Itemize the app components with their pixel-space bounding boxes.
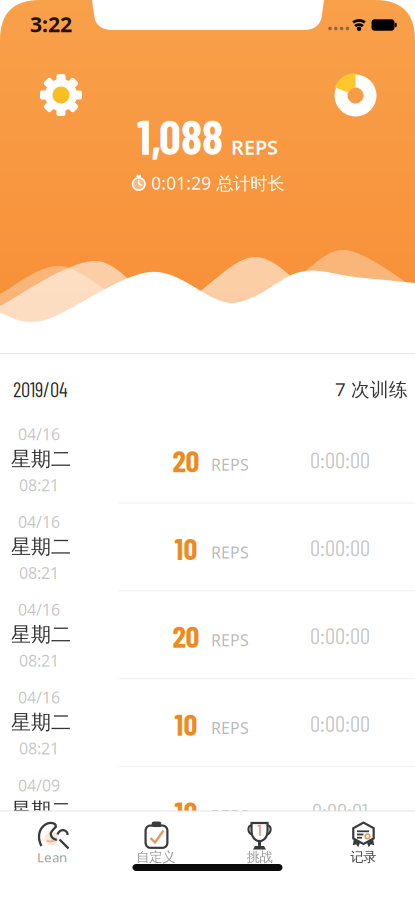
staticText: 08:21 — [19, 650, 59, 671]
staticText: 0:00:00 — [310, 534, 370, 561]
staticText: 08:21 — [19, 562, 59, 583]
staticText: 0:00:00 — [310, 446, 370, 473]
staticText: 星期二 — [11, 710, 71, 735]
staticText: 挑战 — [246, 849, 272, 865]
staticText: 04/16 — [18, 687, 60, 708]
staticText: 08:21 — [19, 474, 59, 496]
staticText: 04/16 — [18, 423, 60, 445]
staticText: 04/16 — [18, 599, 60, 620]
button[interactable]: 1 — [207, 811, 311, 875]
staticText: REPS — [211, 629, 249, 651]
button[interactable]: 记录 — [311, 811, 415, 875]
staticText: 记录 — [350, 849, 376, 865]
staticText: 7 次训练 — [335, 377, 408, 401]
staticText: 1,088 — [137, 107, 223, 164]
staticText: 08:21 — [19, 738, 59, 759]
button[interactable]: Lean — [0, 811, 104, 875]
staticText: 0:00:00 — [310, 709, 370, 736]
staticText: 自定义 — [136, 849, 175, 865]
staticText: 2019/04 — [13, 377, 68, 401]
staticText: 星期二 — [11, 622, 71, 647]
staticText: REPS — [211, 805, 249, 826]
staticText: 星期二 — [11, 534, 71, 559]
button[interactable]: Statistics — [331, 71, 379, 119]
staticText: REPS — [211, 542, 249, 563]
staticText: Lean — [37, 848, 67, 866]
staticText: 0:00:01 — [312, 797, 368, 824]
staticText: 10 — [174, 705, 197, 742]
staticText: REPS — [211, 454, 249, 475]
staticText: 04/16 — [18, 511, 60, 532]
staticText: 20 — [172, 442, 199, 478]
staticText: 星期二 — [11, 798, 71, 822]
staticText: 星期二 — [11, 447, 71, 471]
staticText: 10 — [174, 793, 197, 830]
button[interactable]: Settings — [38, 72, 84, 118]
staticText: 08:21 — [19, 826, 59, 847]
button[interactable]: 自定义 — [104, 811, 207, 875]
staticText: 0:01:29 总计时长 — [151, 171, 284, 194]
staticText: 3:22 — [30, 10, 72, 38]
staticText: REPS — [231, 134, 278, 160]
staticText: 10 — [174, 529, 197, 566]
staticText: REPS — [211, 717, 249, 738]
staticText: 1 — [257, 821, 261, 839]
staticText: 20 — [172, 617, 199, 654]
staticText: 04/09 — [18, 775, 60, 796]
staticText: 0:00:00 — [310, 621, 370, 649]
